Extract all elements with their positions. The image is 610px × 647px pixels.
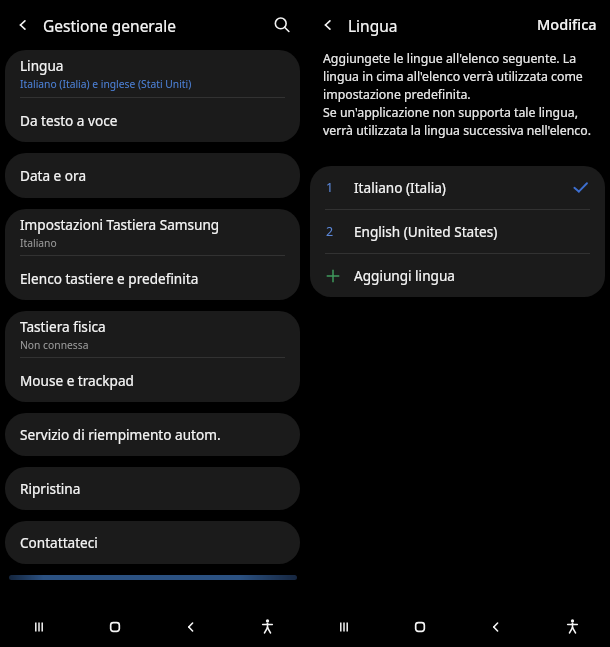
staticText: Data e ora (20, 166, 87, 185)
button[interactable]: Recent apps (0, 606, 77, 647)
staticText: Modifica (537, 14, 597, 34)
button[interactable]: Back (458, 606, 534, 647)
staticText: Contattateci (20, 533, 98, 552)
staticText: Tastiera fisica (20, 317, 106, 336)
staticText: English (United States) (354, 222, 498, 241)
staticText: Lingua (20, 56, 64, 75)
button[interactable]: 2 (310, 210, 605, 253)
staticText: Ripristina (20, 479, 81, 498)
staticText: Lingua (348, 15, 398, 36)
staticText: Servizio di riempimento autom. (20, 425, 221, 444)
button[interactable]: Ripristina (5, 467, 300, 510)
button[interactable]: Back (314, 11, 342, 39)
button[interactable]: Home (77, 606, 153, 647)
button[interactable]: Home (382, 606, 458, 647)
staticText: Da testo a voce (20, 111, 118, 130)
staticText: Italiano (Italia) (354, 178, 446, 197)
button[interactable]: Contattateci (5, 521, 300, 564)
button[interactable]: Accessibility (229, 606, 305, 647)
button[interactable]: Recent apps (305, 606, 382, 647)
staticText: Italiano (20, 236, 57, 250)
staticText: Mouse e trackpad (20, 371, 134, 390)
staticText: Aggiungi lingua (354, 266, 455, 285)
button[interactable]: Mouse e trackpad (5, 358, 300, 402)
button[interactable]: 1 (310, 166, 605, 209)
button[interactable]: Lingua (5, 50, 300, 97)
button[interactable]: Aggiungi lingua (310, 254, 605, 297)
button[interactable]: Back (153, 606, 229, 647)
staticText: Non connessa (20, 338, 89, 352)
button[interactable]: Modifica (529, 9, 605, 39)
staticText: 2 (326, 223, 334, 240)
button[interactable]: Elenco tastiere e predefinita (5, 256, 300, 300)
button[interactable]: Accessibility (534, 606, 610, 647)
staticText: Elenco tastiere e predefinita (20, 269, 199, 288)
button[interactable]: Tastiera fisica (5, 311, 300, 357)
staticText: Impostazioni Tastiera Samsung (20, 215, 220, 234)
staticText: Aggiungete le lingue all'elenco seguente… (323, 50, 596, 139)
button[interactable]: Servizio di riempimento autom. (5, 413, 300, 456)
staticText: Italiano (Italia) e inglese (Stati Uniti… (20, 77, 192, 91)
staticText: 1 (326, 179, 334, 196)
button[interactable]: Data e ora (5, 153, 300, 198)
button[interactable]: Da testo a voce (5, 98, 300, 142)
button[interactable]: Back (9, 11, 37, 39)
staticText: Gestione generale (43, 15, 176, 36)
button[interactable]: Search (268, 11, 296, 39)
button[interactable]: Impostazioni Tastiera Samsung (5, 209, 300, 255)
